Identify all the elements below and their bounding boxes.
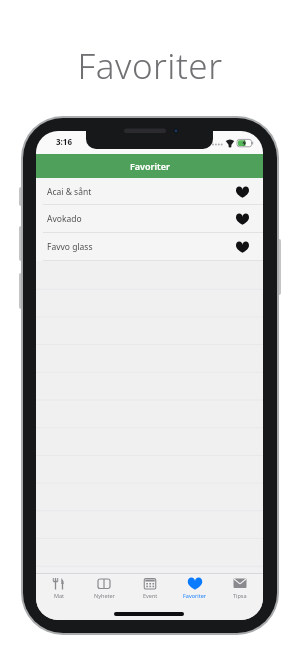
staticText: Avokado	[47, 213, 82, 225]
button[interactable]: Nyheter	[81, 577, 127, 605]
button[interactable]: Event	[127, 577, 173, 605]
staticText: Favoriter	[183, 592, 207, 599]
button[interactable]: Favoriter	[172, 577, 218, 605]
button[interactable]: Tipsa	[217, 577, 263, 605]
button[interactable]: Acai & sånt	[36, 178, 263, 205]
staticText: Favvo glass	[47, 241, 93, 253]
button[interactable]: Avokado	[36, 205, 263, 233]
staticText: Nyheter	[94, 592, 115, 599]
staticText: Tipsa	[233, 592, 247, 599]
staticText: Event	[143, 592, 158, 599]
button[interactable]: Mat	[36, 577, 82, 605]
button[interactable]: Favvo glass	[36, 233, 263, 261]
staticText: Favoriter	[130, 160, 170, 172]
staticText: Favoriter	[0, 42, 300, 90]
staticText: 3:16	[56, 136, 72, 147]
staticText: Mat	[54, 592, 65, 599]
staticText: Acai & sånt	[47, 186, 92, 198]
